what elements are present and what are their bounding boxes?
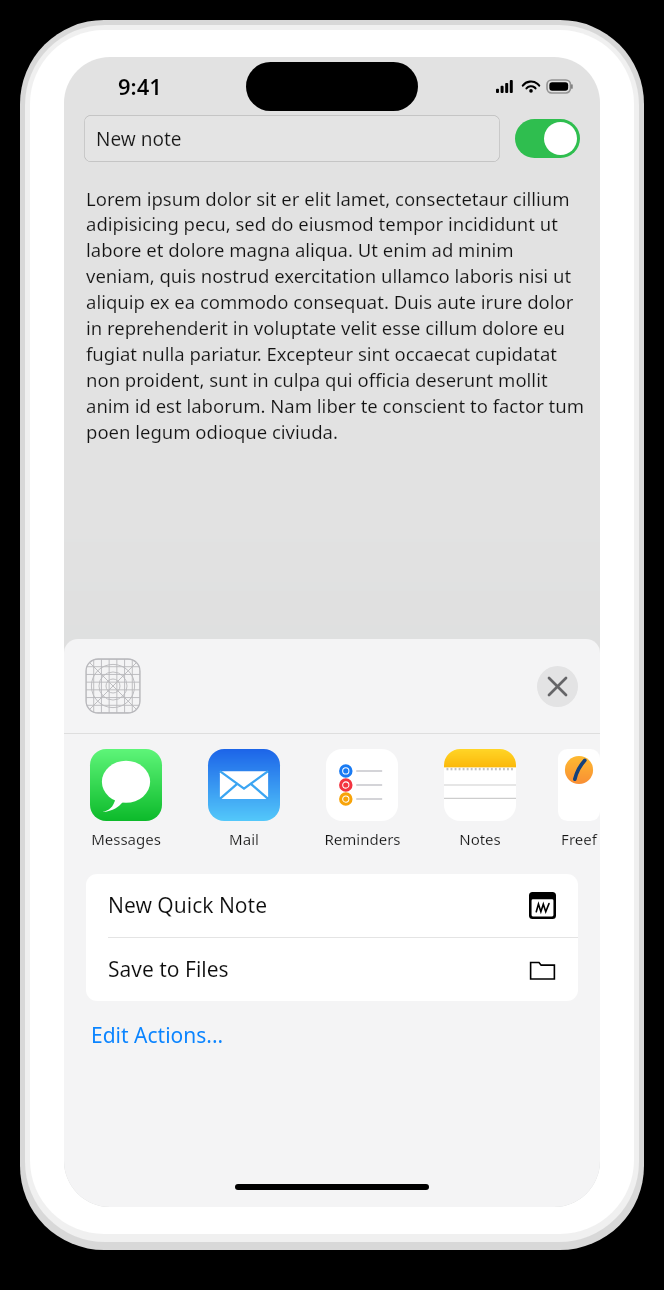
staticText: 9:41 <box>118 71 162 101</box>
button[interactable]: Close <box>537 666 578 707</box>
staticText: New Quick Note <box>108 891 529 920</box>
button[interactable]: Save to Files <box>86 938 578 1001</box>
staticText: Reminders <box>324 829 401 849</box>
button[interactable]: New note <box>84 115 500 162</box>
button[interactable]: Freeform <box>558 749 600 849</box>
staticText: Messages <box>91 829 161 849</box>
button[interactable]: Messages <box>86 749 166 849</box>
staticText: New note <box>96 126 182 152</box>
button[interactable]: Edit Actions... <box>86 1013 229 1058</box>
button[interactable]: Mail <box>204 749 284 849</box>
button[interactable]: New Quick Note <box>86 874 578 937</box>
button[interactable]: Enable note <box>515 119 580 158</box>
staticText: Mail <box>229 829 259 849</box>
staticText: Save to Files <box>108 955 529 984</box>
staticText: Edit Actions... <box>91 1021 224 1050</box>
button[interactable]: Notes <box>440 749 520 849</box>
staticText: Notes <box>459 829 501 849</box>
button[interactable]: Reminders <box>322 749 402 849</box>
staticText: Freeform <box>558 829 600 849</box>
staticText: Lorem ipsum dolor sit er elit lamet, con… <box>86 186 584 445</box>
